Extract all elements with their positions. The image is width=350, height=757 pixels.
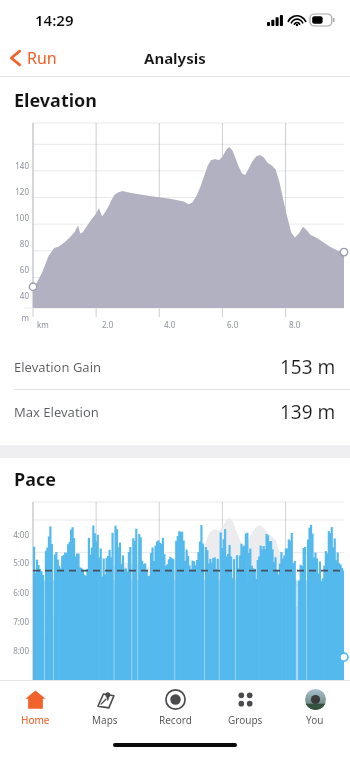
staticText: Elevation <box>14 88 98 113</box>
staticText: 6.0 <box>227 319 239 330</box>
button[interactable]: Home <box>0 681 70 733</box>
staticText: 7:00 <box>0 616 29 627</box>
staticText: You <box>306 713 324 727</box>
staticText: 4:00 <box>0 529 29 540</box>
staticText: m <box>0 312 29 323</box>
staticText: Analysis <box>144 48 206 68</box>
staticText: Home <box>21 713 50 727</box>
button[interactable]: Record <box>140 681 210 733</box>
staticText: 153 m <box>280 354 336 380</box>
staticText: Max Elevation <box>14 403 99 421</box>
staticText: km <box>37 319 49 330</box>
staticText: Maps <box>92 713 118 727</box>
staticText: 80 <box>0 238 29 249</box>
staticText: 100 <box>0 212 29 223</box>
staticText: 40 <box>0 290 29 301</box>
staticText: 5:00 <box>0 557 29 568</box>
staticText: Elevation Gain <box>14 358 102 376</box>
staticText: 6:00 <box>0 587 29 598</box>
staticText: 139 m <box>280 399 336 425</box>
button[interactable]: Elevation Gain <box>0 345 350 389</box>
staticText: 120 <box>0 186 29 197</box>
staticText: 60 <box>0 264 29 275</box>
staticText: 2.0 <box>102 319 114 330</box>
staticText: Record <box>159 713 192 727</box>
button[interactable]: Groups <box>210 681 280 733</box>
button[interactable]: You <box>280 681 350 733</box>
staticText: Groups <box>228 713 263 727</box>
button[interactable]: Run <box>0 42 69 74</box>
button[interactable]: Maps <box>70 681 140 733</box>
staticText: 140 <box>0 160 29 171</box>
staticText: 4.0 <box>164 319 176 330</box>
staticText: Pace <box>14 467 56 492</box>
staticText: Run <box>27 47 57 69</box>
button[interactable]: Max Elevation <box>0 390 350 434</box>
staticText: 8.0 <box>289 319 301 330</box>
staticText: 14:29 <box>35 10 74 30</box>
staticText: 8:00 <box>0 645 29 656</box>
